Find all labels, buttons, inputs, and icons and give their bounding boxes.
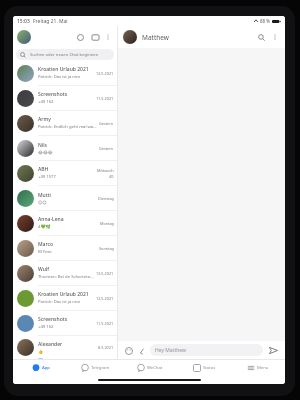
button[interactable]: Attach [136, 345, 147, 356]
staticText: Matthew [142, 33, 169, 42]
staticText: +49 162 [38, 324, 54, 330]
staticText: 40 [109, 174, 114, 179]
button[interactable]: Anna-Lena [13, 211, 117, 235]
staticText: Mittwoch [97, 168, 114, 173]
staticText: Wulf [38, 266, 49, 273]
button[interactable]: Wulf [13, 261, 117, 285]
staticText: Thorsten: Bei de Schortetour wird ... [38, 274, 94, 280]
staticText: 👍 [38, 349, 44, 354]
button[interactable]: Menu [231, 360, 285, 376]
staticText: 11.5.2021 [96, 96, 114, 101]
staticText: App [42, 365, 50, 371]
staticText: 8.5.2021 [98, 345, 114, 350]
staticText: +49 1577 [38, 174, 56, 180]
staticText: 12.5.2021 [96, 71, 114, 76]
button[interactable]: Screenshots [13, 311, 117, 335]
staticText: 11.5.2021 [96, 321, 114, 326]
staticText: +49 162 [38, 99, 54, 105]
staticText: Sonntag [99, 246, 114, 251]
staticText: 13.5.2021 [96, 271, 114, 276]
staticText: 12.5.2021 [96, 296, 114, 301]
button[interactable]: Army [13, 111, 117, 135]
button[interactable]: More options [270, 32, 280, 42]
staticText: Kroatien Urlaub 2021 [38, 291, 89, 298]
staticText: Patrick: Endlich geht mal was voran [38, 124, 97, 130]
button[interactable]: New chat [89, 31, 101, 43]
staticText: Alexander [38, 341, 63, 348]
staticText: 😊😊 [38, 200, 47, 205]
staticText: Suchen oder neuen Chat beginnen [30, 52, 99, 58]
button[interactable]: Emoji [123, 345, 134, 356]
staticText: Marco [38, 241, 53, 248]
staticText: Montag [100, 221, 114, 226]
button[interactable]: More options [103, 32, 113, 42]
button[interactable]: Kroatien Urlaub 2021 [13, 286, 117, 310]
staticText: Freitag 21. Mai [33, 18, 68, 25]
staticText: 88 % [260, 18, 271, 24]
button[interactable]: Nils [13, 136, 117, 160]
button[interactable]: Matthew avatar [123, 30, 137, 44]
button[interactable]: Kroatien Urlaub 2021 [13, 61, 117, 85]
button[interactable]: WeChat [123, 360, 177, 376]
button[interactable]: Send [267, 344, 280, 357]
staticText: Kroatien Urlaub 2021 [38, 66, 89, 73]
button[interactable]: Screenshots [13, 86, 117, 110]
button[interactable]: Search [255, 31, 267, 43]
button[interactable]: Mutti [13, 186, 117, 210]
staticText: Anna-Lena [38, 216, 64, 223]
staticText: Screenshots [38, 91, 68, 98]
button[interactable]: Suchen oder neuen Chat beginnen [16, 49, 114, 60]
staticText: Patrick: Das ist ja nice [38, 74, 81, 80]
button[interactable]: Profile [17, 30, 31, 44]
staticText: Dienstag [98, 196, 114, 201]
staticText: Telegram [91, 365, 110, 371]
staticText: 15:03 [17, 18, 30, 25]
staticText: 4💚🌿 [38, 224, 51, 230]
staticText: 😂😂😂 [38, 150, 53, 155]
button[interactable]: Marco [13, 236, 117, 260]
staticText: Nils [38, 142, 48, 149]
staticText: WeChat [147, 365, 163, 371]
staticText: ABH [38, 166, 49, 173]
staticText: Army [38, 116, 51, 123]
staticText: Patrick: Das ist ja nice [38, 299, 81, 305]
staticText: Mutti [38, 192, 51, 199]
button[interactable]: ABH [13, 161, 117, 185]
button[interactable]: Telegram [68, 360, 123, 376]
button[interactable]: App [13, 360, 68, 376]
button[interactable]: Status [74, 31, 86, 43]
staticText: Screenshots [38, 316, 68, 323]
staticText: Hey Matthew [155, 347, 186, 354]
staticText: Gestern [99, 121, 114, 126]
staticText: Gestern [99, 146, 114, 151]
button[interactable]: Status [177, 360, 231, 376]
staticText: Bl Foto [38, 249, 52, 255]
staticText: Status [203, 365, 216, 371]
button[interactable]: Hey Matthew [150, 344, 263, 356]
staticText: Menu [257, 365, 269, 371]
button[interactable]: Alexander [13, 336, 117, 359]
